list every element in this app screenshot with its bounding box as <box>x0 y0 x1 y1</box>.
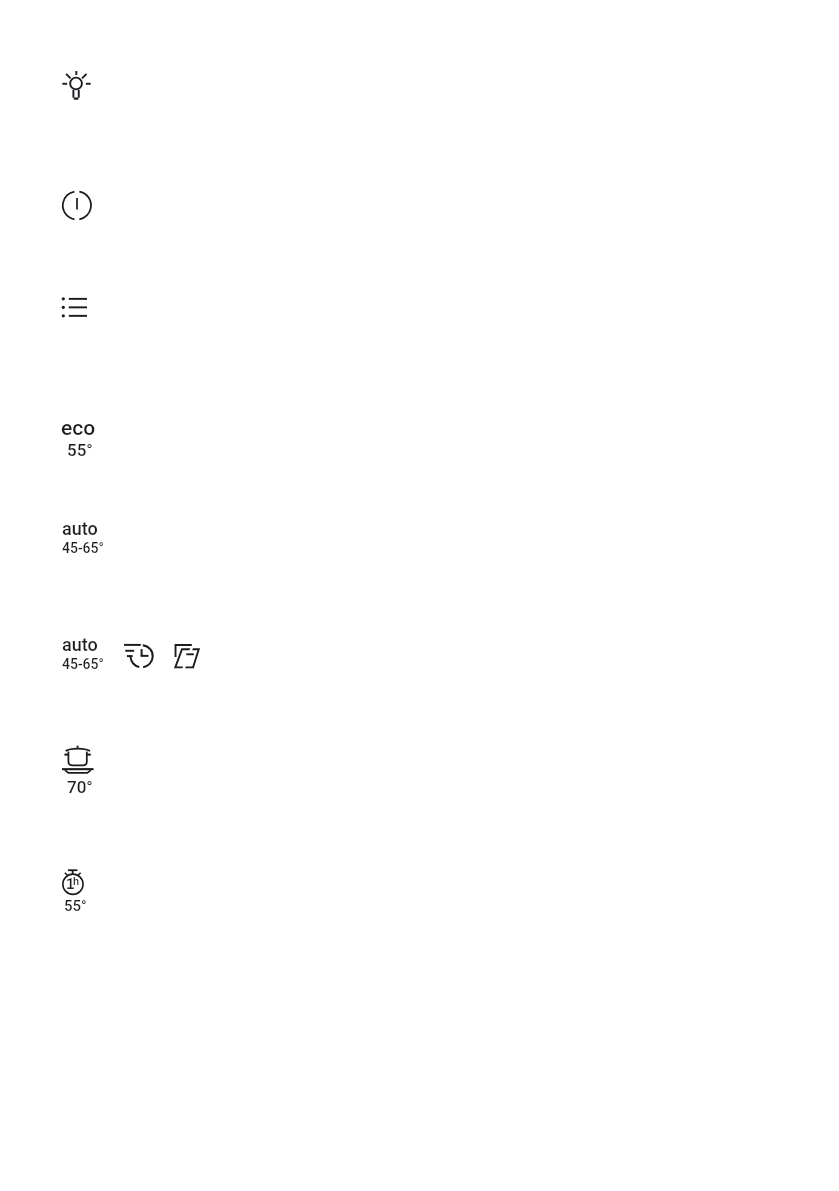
button[interactable]: Half load <box>175 644 199 668</box>
staticText: auto <box>62 634 98 655</box>
staticText: auto <box>62 518 98 539</box>
staticText: 45-65° <box>62 656 104 672</box>
staticText: 70° <box>67 777 93 797</box>
staticText: 55° <box>64 897 87 915</box>
button[interactable]: Brightness <box>62 70 91 99</box>
button[interactable]: Power <box>60 188 94 222</box>
button[interactable]: Quick programme <box>124 644 153 673</box>
staticText: 1 <box>66 875 75 893</box>
button[interactable]: One hour programme 55 degrees <box>61 868 87 914</box>
button[interactable]: Intensive programme 70 degrees <box>61 744 95 796</box>
button[interactable]: auto <box>61 632 103 672</box>
staticText: 55° <box>67 440 93 460</box>
staticText: h <box>73 875 80 888</box>
button[interactable]: Programme list <box>61 297 87 323</box>
staticText: 45-65° <box>62 540 104 556</box>
button[interactable]: eco <box>60 414 96 460</box>
staticText: eco <box>61 416 96 441</box>
button[interactable]: auto <box>61 516 103 556</box>
